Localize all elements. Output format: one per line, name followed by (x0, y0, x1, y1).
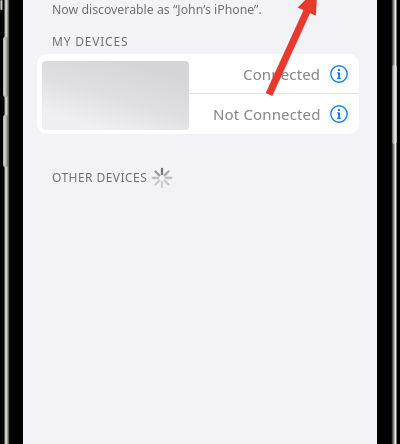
button[interactable]: Not Connected (37, 94, 359, 134)
staticText: Now discoverable as “John’s iPhone”. (52, 1, 262, 18)
button[interactable] (330, 105, 348, 123)
staticText: MY DEVICES (52, 33, 129, 49)
button[interactable] (330, 65, 348, 83)
staticText: Not Connected (213, 104, 321, 124)
staticText: Connected (243, 64, 321, 84)
staticText: OTHER DEVICES (52, 169, 148, 185)
button[interactable]: Connected (37, 54, 359, 94)
